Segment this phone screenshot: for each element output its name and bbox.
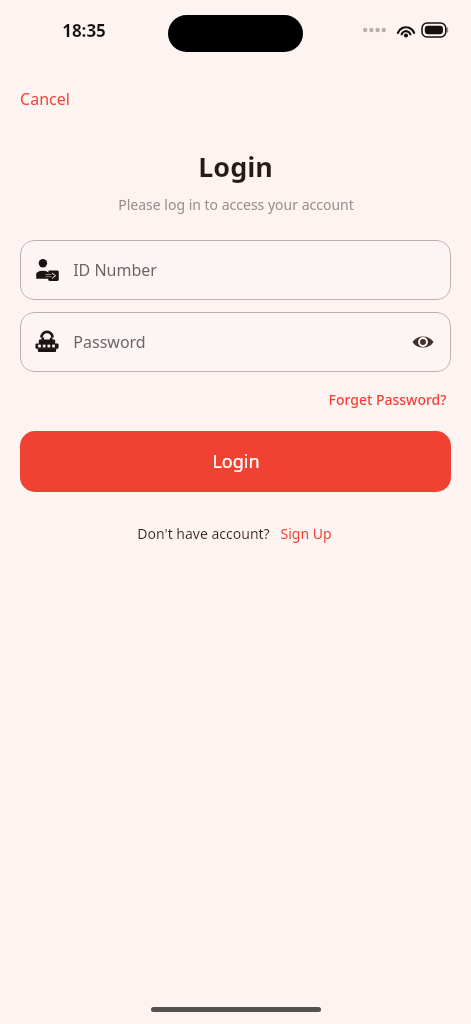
staticText: Please log in to access your account [118,195,354,214]
button[interactable]: Login [20,431,451,492]
staticText: ID Number [73,259,157,281]
button[interactable]: Forget Password? [324,386,451,413]
staticText: Forget Password? [328,390,447,409]
staticText: 18:35 [62,19,106,42]
staticText: Sign Up [280,524,332,543]
button[interactable]: Cancel [18,86,72,112]
staticText: Login [212,449,260,474]
button[interactable]: Sign Up [278,522,334,545]
staticText: Login [198,148,273,185]
button[interactable]: ID Number [20,240,451,300]
button[interactable]: Password [20,312,451,372]
staticText: Password [73,331,146,353]
staticText: Don't have account? [137,524,270,543]
button[interactable]: Show password [409,328,437,356]
staticText: Cancel [20,88,70,110]
